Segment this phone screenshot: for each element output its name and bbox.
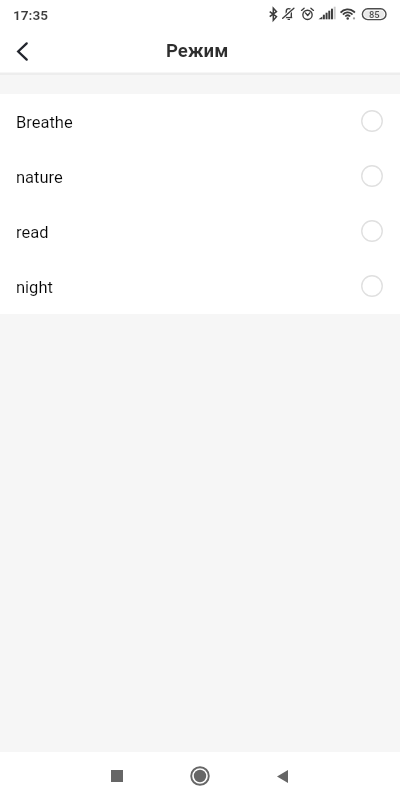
button[interactable]: Breathe [0,94,400,149]
staticText: nature [16,168,63,187]
button[interactable]: read [0,204,400,259]
button[interactable]: Home [176,752,224,800]
button[interactable]: nature [0,149,400,204]
button[interactable]: Back [258,752,306,800]
button[interactable]: night [0,259,400,314]
staticText: read [16,223,49,242]
staticText: 17:35 [13,7,49,23]
button[interactable]: Recent apps [93,752,141,800]
staticText: 85 [369,9,380,20]
staticText: Режим [166,40,229,62]
button[interactable]: Back [0,30,42,72]
staticText: Breathe [16,113,73,132]
staticText: night [16,278,53,297]
